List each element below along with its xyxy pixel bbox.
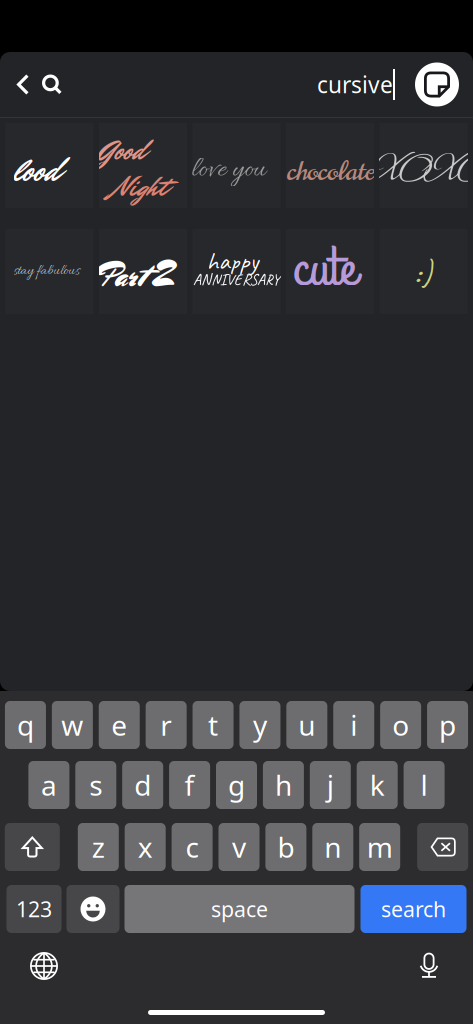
staticText: cute [293,230,357,307]
staticText: ANNIVERSARY [193,269,280,290]
staticText: b [277,828,294,866]
button[interactable]: a [28,761,69,809]
staticText: p [439,706,456,744]
button[interactable]: v [218,823,259,871]
button[interactable]: Good Night sticker [99,123,187,208]
staticText: m [367,828,393,866]
button[interactable]: cute sticker [286,229,374,314]
button[interactable]: i [333,701,374,749]
button[interactable]: x [125,823,166,871]
button[interactable]: k [357,761,398,809]
button[interactable]: q [5,701,46,749]
button[interactable]: Shift [5,823,60,871]
button[interactable]: search [360,885,466,933]
staticText: :) [413,251,431,294]
button[interactable]: j [310,761,351,809]
staticText: x [138,828,153,866]
button[interactable]: chocolate sticker [286,123,374,208]
button[interactable]: Stickers [415,62,459,106]
button[interactable]: Emoji [66,885,119,933]
button[interactable]: h [263,761,304,809]
button[interactable]: g [216,761,257,809]
staticText: d [134,766,151,804]
staticText: t [208,706,218,744]
staticText: w [61,706,83,744]
staticText: e [111,706,127,744]
staticText: s [89,766,102,804]
staticText: q [17,706,34,744]
staticText: z [92,828,105,866]
button[interactable]: c [172,823,213,871]
staticText: space [211,895,268,923]
staticText: lood [12,147,60,194]
button[interactable]: y [239,701,280,749]
staticText: search [381,895,446,923]
button[interactable]: m [359,823,400,871]
staticText: o [392,706,409,744]
staticText: i [350,706,357,744]
button[interactable]: lood sticker [5,123,93,208]
button[interactable]: s [75,761,116,809]
button[interactable]: p [427,701,468,749]
button[interactable]: love you sticker [192,123,280,208]
button[interactable]: Back [12,61,34,107]
button[interactable]: 123 [6,885,61,933]
button[interactable]: o [380,701,421,749]
button[interactable]: Part 2 sticker [99,229,187,314]
button[interactable]: Search [38,61,66,107]
staticText: r [160,706,172,744]
staticText: y [253,706,267,744]
button[interactable]: t [192,701,233,749]
button[interactable]: r [146,701,187,749]
staticText: k [370,766,385,804]
button[interactable]: happy Anniversary sticker [192,229,280,314]
staticText: a [41,766,57,804]
staticText: Night [114,166,168,207]
button[interactable]: d [122,761,163,809]
staticText: f [185,766,195,804]
button[interactable]: Delete [417,823,468,871]
button[interactable]: z [78,823,119,871]
button[interactable]: stay fabulous sticker [5,229,93,314]
staticText: v [232,828,246,866]
staticText: XOXO [372,145,473,196]
button[interactable]: u [286,701,327,749]
button[interactable]: XOXO sticker [379,123,467,208]
button[interactable]: e [99,701,140,749]
staticText: Good [100,131,146,170]
button[interactable]: b [265,823,306,871]
button[interactable]: l [404,761,445,809]
staticText: j [327,766,334,804]
staticText: stay fabulous [13,262,79,281]
staticText: c [186,828,199,866]
staticText: love you [191,153,265,188]
staticText: chocolate [287,153,375,190]
staticText: Part 2 [96,253,175,298]
staticText: u [298,706,315,744]
button[interactable]: w [52,701,93,749]
staticText: g [228,766,245,804]
button[interactable]: space [124,885,354,933]
button[interactable]: n [312,823,353,871]
staticText: cursive [317,69,393,99]
button[interactable]: smiley sticker [379,229,467,314]
button[interactable]: Next keyboard [22,946,66,986]
staticText: 123 [16,895,52,923]
staticText: happy [206,245,258,277]
staticText: n [324,828,341,866]
button[interactable]: Dictation [407,946,451,986]
button[interactable]: f [169,761,210,809]
staticText: l [421,766,428,804]
staticText: h [275,766,292,804]
